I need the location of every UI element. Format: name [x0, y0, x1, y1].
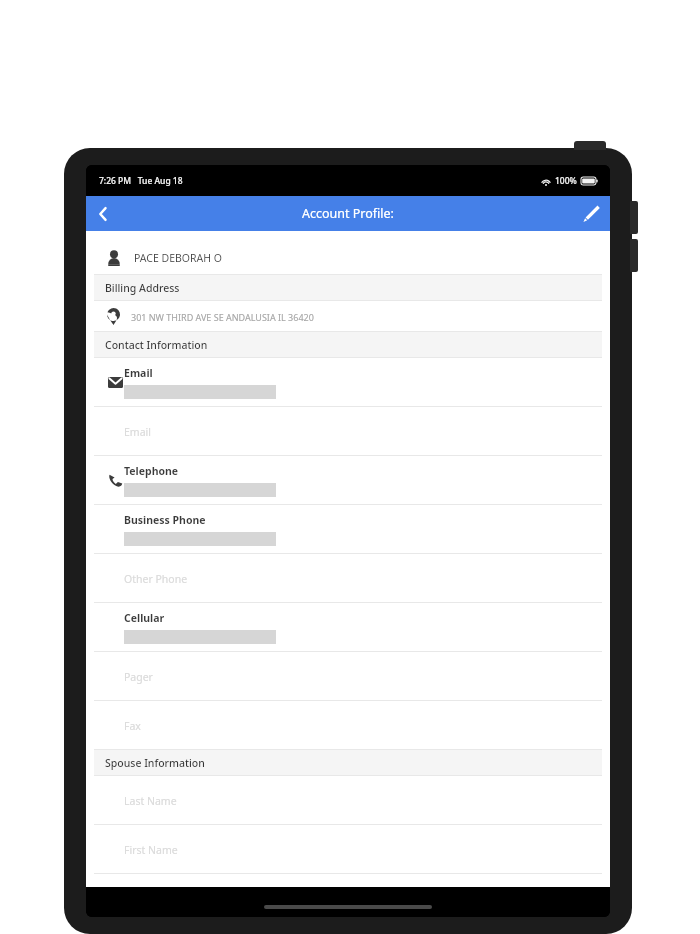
staticText: Account Profile: — [302, 205, 394, 222]
button[interactable]: PACE DEBORAH O — [94, 241, 602, 275]
staticText: 301 NW THIRD AVE SE ANDALUSIA IL 36420 — [131, 311, 314, 323]
staticText: Email — [124, 425, 151, 439]
button[interactable]: Back — [86, 197, 120, 231]
button[interactable]: Telephone — [94, 456, 602, 505]
staticText: Last Name — [124, 794, 177, 808]
button[interactable]: Email — [94, 358, 602, 407]
staticText: Business Phone — [124, 513, 206, 527]
staticText: Email — [124, 366, 153, 380]
staticText: 100% — [555, 175, 577, 187]
staticText: Pager — [124, 670, 153, 684]
button[interactable]: Pager — [94, 652, 602, 701]
staticText: 7:26 PM Tue Aug 18 — [99, 175, 183, 187]
button[interactable]: First Name — [94, 825, 602, 874]
button[interactable]: Last Name — [94, 776, 602, 825]
staticText: Telephone — [124, 464, 179, 478]
staticText: First Name — [124, 843, 178, 857]
staticText: Billing Address — [105, 281, 180, 295]
button[interactable]: Other Phone — [94, 554, 602, 603]
staticText: Other Phone — [124, 572, 188, 586]
button[interactable]: Cellular — [94, 603, 602, 652]
staticText: Cellular — [124, 611, 165, 625]
staticText: PACE DEBORAH O — [134, 251, 223, 265]
button[interactable]: 301 NW THIRD AVE SE ANDALUSIA IL 36420 — [94, 301, 602, 332]
button[interactable]: Business Phone — [94, 505, 602, 554]
staticText: Fax — [124, 719, 141, 733]
staticText: Spouse Information — [105, 756, 205, 770]
button[interactable]: Fax — [94, 701, 602, 750]
button[interactable]: Edit — [572, 196, 610, 231]
button[interactable]: Email — [94, 407, 602, 456]
staticText: Contact Information — [105, 338, 208, 352]
